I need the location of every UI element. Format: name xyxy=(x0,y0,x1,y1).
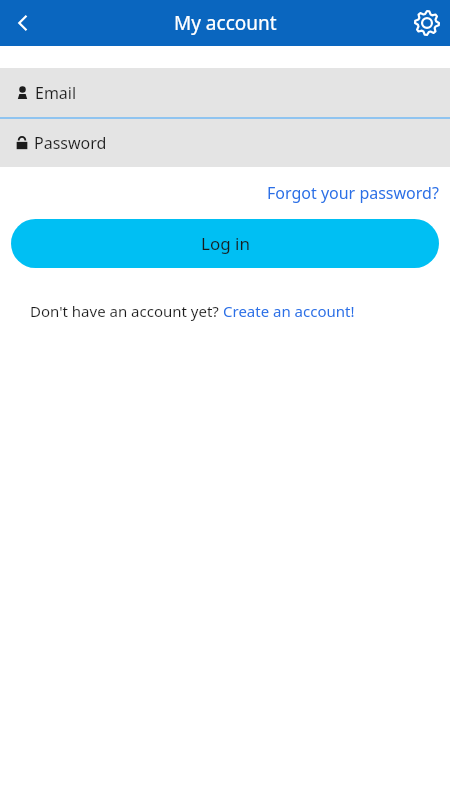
staticText: Create an account! xyxy=(223,301,355,321)
staticText: Log in xyxy=(201,232,250,255)
staticText: Email xyxy=(35,82,77,104)
button[interactable]: Forgot your password? xyxy=(256,178,450,208)
button[interactable]: Back xyxy=(0,0,46,46)
staticText: Forgot your password? xyxy=(267,182,439,204)
button[interactable]: Create an account! xyxy=(223,301,355,321)
staticText: Password xyxy=(34,132,107,154)
button[interactable]: Password xyxy=(0,119,450,167)
button[interactable]: Settings xyxy=(404,0,450,46)
staticText: Don't have an account yet? xyxy=(30,301,223,321)
button[interactable]: Email xyxy=(0,68,450,117)
button[interactable]: Log in xyxy=(11,219,439,268)
staticText: My account xyxy=(174,10,277,36)
